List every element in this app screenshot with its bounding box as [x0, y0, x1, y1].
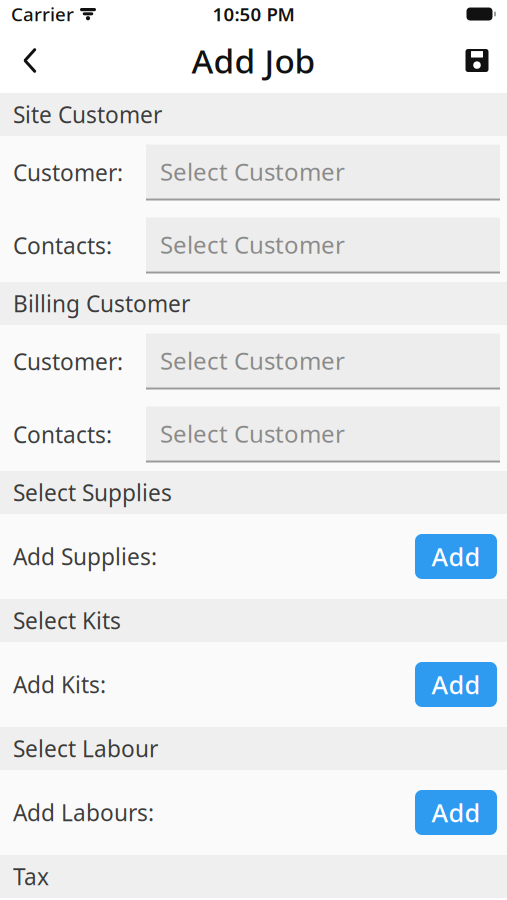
staticText: Add Labours: [13, 797, 154, 827]
button[interactable]: Save [451, 30, 503, 90]
staticText: Add [431, 668, 480, 701]
staticText: Select Customer [160, 229, 345, 260]
staticText: Add [431, 796, 480, 829]
staticText: Add Kits: [13, 669, 106, 699]
button[interactable]: Back [4, 30, 56, 90]
button[interactable]: Add [415, 534, 497, 579]
staticText: Select Customer [160, 156, 345, 187]
button[interactable]: Customer: [0, 325, 507, 398]
staticText: Select Labour [13, 733, 158, 763]
staticText: Site Customer [13, 99, 162, 129]
staticText: Select Supplies [13, 477, 172, 507]
staticText: Billing Customer [13, 288, 190, 318]
button[interactable]: Contacts: [0, 209, 507, 282]
staticText: Contacts: [13, 230, 112, 260]
staticText: Contacts: [13, 419, 112, 449]
staticText: Add [431, 540, 480, 573]
staticText: Add Job [191, 38, 315, 83]
staticText: Select Customer [160, 418, 345, 449]
staticText: Customer: [13, 346, 123, 376]
button[interactable]: Contacts: [0, 398, 507, 471]
button[interactable]: Customer: [0, 136, 507, 209]
staticText: Select Kits [13, 605, 121, 635]
staticText: Add Supplies: [13, 541, 157, 571]
staticText: Tax [13, 861, 49, 891]
staticText: Carrier [11, 2, 74, 26]
button[interactable]: Add [415, 662, 497, 707]
staticText: Customer: [13, 157, 123, 187]
button[interactable]: Add [415, 790, 497, 835]
staticText: Select Customer [160, 345, 345, 376]
staticText: 10:50 PM [212, 2, 294, 26]
